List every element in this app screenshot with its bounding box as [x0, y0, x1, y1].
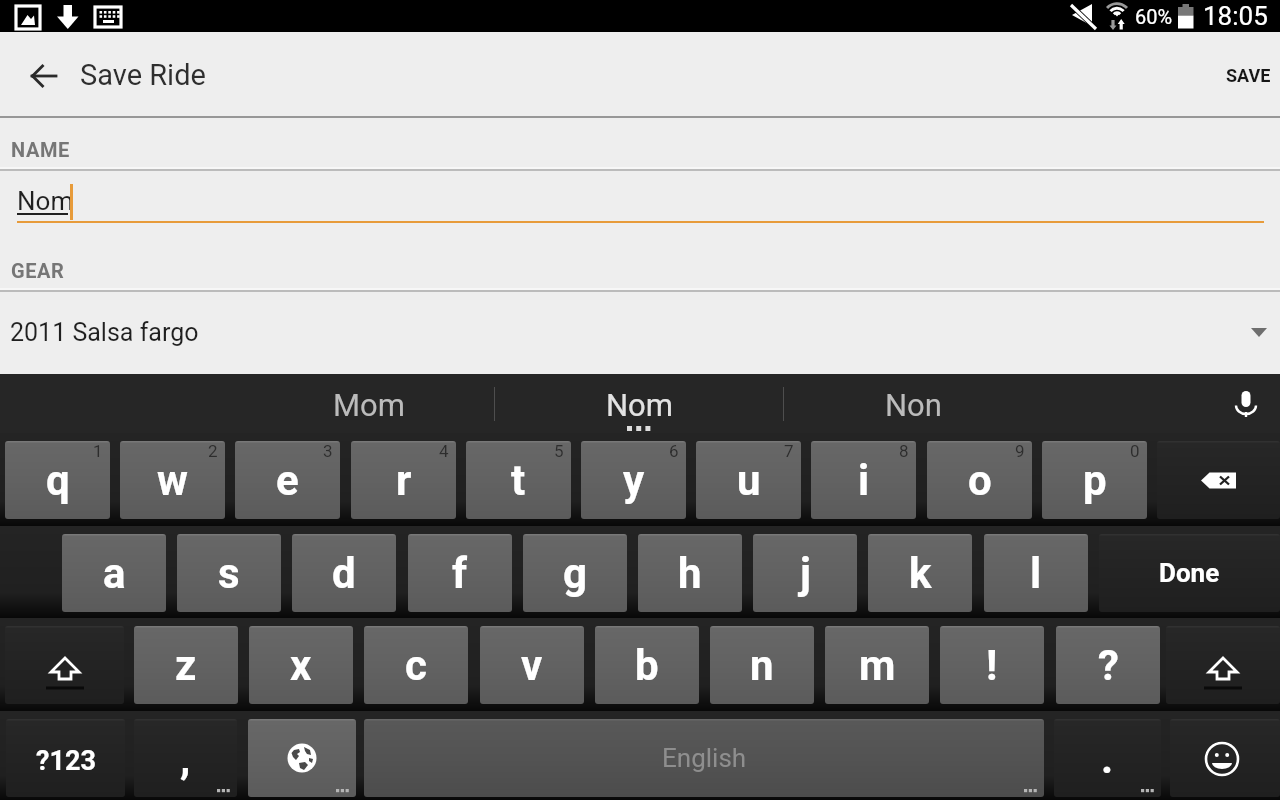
- staticText: 3: [323, 441, 333, 461]
- button[interactable]: y: [581, 441, 686, 519]
- button[interactable]: Shift: [1166, 626, 1280, 704]
- staticText: f: [452, 549, 468, 598]
- button[interactable]: Done: [1099, 534, 1280, 612]
- staticText: v: [521, 641, 543, 690]
- button[interactable]: e: [235, 441, 340, 519]
- staticText: x: [290, 641, 312, 690]
- staticText: h: [678, 549, 702, 598]
- staticText: 7: [784, 441, 794, 461]
- button[interactable]: ?123: [6, 719, 125, 797]
- button[interactable]: n: [710, 626, 814, 704]
- button[interactable]: z: [134, 626, 238, 704]
- button[interactable]: l: [984, 534, 1088, 612]
- button[interactable]: Change language: [248, 719, 356, 797]
- button[interactable]: g: [523, 534, 627, 612]
- button[interactable]: .: [1054, 719, 1161, 797]
- button[interactable]: p: [1042, 441, 1147, 519]
- button[interactable]: b: [595, 626, 699, 704]
- button[interactable]: u: [696, 441, 801, 519]
- staticText: n: [750, 641, 774, 690]
- button[interactable]: Gear: 2011 Salsa fargo: [0, 290, 1280, 374]
- staticText: g: [563, 549, 587, 598]
- button[interactable]: Voice input: [1212, 374, 1280, 433]
- staticText: ?123: [36, 745, 96, 777]
- button[interactable]: j: [753, 534, 857, 612]
- button[interactable]: x: [249, 626, 353, 704]
- button[interactable]: t: [466, 441, 571, 519]
- staticText: m: [859, 641, 896, 690]
- staticText: 60%: [1135, 5, 1173, 28]
- staticText: !: [986, 641, 998, 690]
- staticText: English: [662, 743, 747, 773]
- staticText: 18:05: [1203, 1, 1268, 31]
- button[interactable]: Nom: [495, 375, 783, 434]
- staticText: j: [800, 549, 811, 598]
- button[interactable]: Back: [22, 53, 67, 98]
- button[interactable]: f: [408, 534, 512, 612]
- staticText: a: [103, 549, 126, 598]
- staticText: Mom: [333, 387, 405, 423]
- staticText: q: [46, 456, 70, 505]
- staticText: y: [623, 456, 645, 505]
- button[interactable]: Emoji: [1170, 719, 1280, 797]
- staticText: 8: [899, 441, 909, 461]
- staticText: 4: [439, 441, 449, 461]
- button[interactable]: w: [120, 441, 225, 519]
- button[interactable]: h: [638, 534, 742, 612]
- staticText: NAME: [11, 138, 70, 161]
- button[interactable]: i: [811, 441, 916, 519]
- staticText: Done: [1159, 558, 1220, 588]
- staticText: u: [737, 456, 761, 505]
- button[interactable]: q: [5, 441, 110, 519]
- staticText: i: [858, 456, 870, 505]
- staticText: 9: [1015, 441, 1025, 461]
- button[interactable]: d: [292, 534, 396, 612]
- button[interactable]: ?: [1056, 626, 1160, 704]
- staticText: p: [1083, 456, 1107, 505]
- staticText: o: [968, 456, 992, 505]
- staticText: SAVE: [1226, 65, 1271, 86]
- button[interactable]: Name: [0, 171, 1280, 231]
- button[interactable]: o: [927, 441, 1032, 519]
- staticText: 5: [554, 441, 564, 461]
- button[interactable]: Backspace: [1157, 441, 1280, 519]
- staticText: d: [332, 549, 356, 598]
- staticText: Non: [885, 387, 942, 423]
- staticText: Nom: [606, 387, 673, 423]
- staticText: 2: [208, 441, 218, 461]
- button[interactable]: SAVE: [1214, 55, 1280, 95]
- button[interactable]: Mom: [237, 375, 500, 434]
- staticText: r: [396, 456, 412, 505]
- staticText: l: [1030, 549, 1042, 598]
- button[interactable]: v: [480, 626, 584, 704]
- staticText: Save Ride: [80, 58, 206, 92]
- staticText: t: [511, 456, 526, 505]
- staticText: ?: [1098, 641, 1119, 690]
- button[interactable]: k: [868, 534, 972, 612]
- staticText: 2011 Salsa fargo: [10, 318, 199, 347]
- button[interactable]: r: [351, 441, 456, 519]
- staticText: b: [635, 641, 659, 690]
- staticText: z: [175, 641, 197, 690]
- staticText: 0: [1130, 441, 1140, 461]
- button[interactable]: a: [62, 534, 166, 612]
- staticText: 1: [93, 441, 103, 461]
- staticText: 6: [669, 441, 679, 461]
- staticText: ,: [180, 734, 191, 783]
- staticText: Nom: [17, 186, 74, 216]
- button[interactable]: s: [177, 534, 281, 612]
- staticText: w: [157, 456, 188, 505]
- button[interactable]: English: [364, 719, 1044, 797]
- staticText: e: [276, 456, 299, 505]
- button[interactable]: m: [825, 626, 929, 704]
- button[interactable]: Non: [784, 375, 1043, 434]
- staticText: .: [1101, 734, 1114, 783]
- button[interactable]: c: [364, 626, 468, 704]
- staticText: c: [405, 641, 427, 690]
- button[interactable]: ,: [134, 719, 237, 797]
- staticText: GEAR: [11, 259, 65, 282]
- staticText: s: [218, 549, 240, 598]
- button[interactable]: Shift: [5, 626, 124, 704]
- staticText: k: [909, 549, 932, 598]
- button[interactable]: !: [940, 626, 1044, 704]
